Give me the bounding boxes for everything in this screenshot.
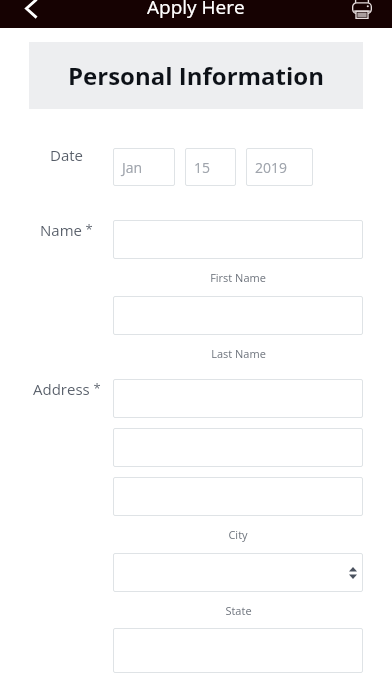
staticText: Apply Here — [147, 0, 245, 20]
button[interactable] — [113, 296, 363, 335]
button[interactable] — [113, 477, 363, 516]
staticText: City — [228, 527, 248, 542]
staticText: Address — [33, 379, 90, 399]
staticText: Name — [40, 220, 82, 240]
staticText: 2019 — [255, 158, 288, 177]
staticText: State — [225, 603, 252, 618]
button[interactable]: Jan — [113, 148, 175, 186]
button[interactable]: Back — [0, 0, 63, 28]
button[interactable] — [113, 220, 363, 259]
button[interactable] — [113, 428, 363, 467]
staticText: Date — [50, 145, 83, 165]
button[interactable] — [113, 553, 363, 592]
staticText: Last Name — [211, 346, 266, 361]
staticText: * — [82, 220, 93, 238]
button[interactable]: 15 — [185, 148, 236, 186]
button[interactable]: 2019 — [246, 148, 313, 186]
staticText: Jan — [122, 158, 143, 177]
staticText: Personal Information — [68, 59, 324, 92]
button[interactable] — [113, 379, 363, 418]
button[interactable] — [113, 628, 363, 673]
button[interactable]: Print — [332, 0, 392, 28]
staticText: First Name — [210, 270, 266, 285]
staticText: 15 — [194, 158, 211, 177]
staticText: * — [90, 379, 101, 397]
